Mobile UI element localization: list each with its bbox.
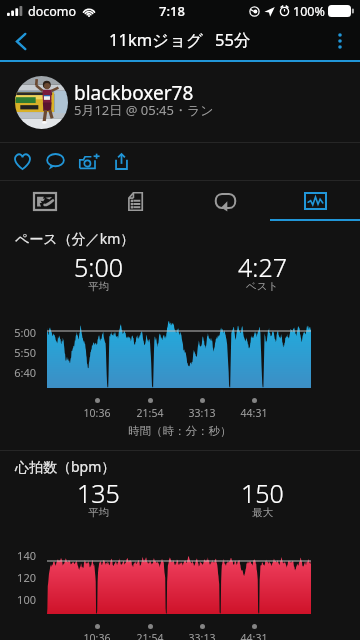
staticText: 10:36	[79, 631, 115, 640]
staticText: 10:36	[79, 406, 115, 420]
staticText: 心拍数（bpm）	[15, 457, 116, 476]
staticText: 5月12日 @ 05:45・ラン	[74, 101, 214, 119]
button[interactable]: Map	[0, 181, 90, 221]
staticText: 5:00	[0, 325, 36, 340]
staticText: 55分	[215, 28, 251, 51]
staticText: 21:54	[132, 631, 168, 640]
staticText: 33:13	[184, 631, 220, 640]
button[interactable]: blackboxer78	[0, 62, 360, 142]
staticText: 6:40	[0, 365, 36, 380]
staticText: 150	[241, 476, 284, 510]
staticText: 最大	[252, 506, 273, 519]
staticText: 7:18	[159, 2, 185, 20]
staticText: 33:13	[184, 406, 220, 420]
button[interactable]: Add photo	[72, 143, 105, 180]
staticText: 時間（時：分：秒）	[128, 424, 232, 438]
staticText: 120	[0, 570, 36, 585]
staticText: 5:00	[74, 250, 123, 284]
staticText: 44:31	[236, 631, 272, 640]
button[interactable]: Like	[6, 143, 39, 180]
staticText: 4:27	[238, 250, 287, 284]
button[interactable]: Splits	[90, 181, 180, 221]
staticText: ペース（分／km）	[15, 229, 135, 248]
staticText: 平均	[88, 506, 109, 519]
staticText: 21:54	[132, 406, 168, 420]
staticText: docomo	[28, 3, 77, 20]
staticText: 100%	[293, 3, 325, 20]
button[interactable]: Laps	[180, 181, 270, 221]
button[interactable]: Share	[105, 143, 138, 180]
button[interactable]: Back	[0, 22, 42, 60]
button[interactable]: Comment	[39, 143, 72, 180]
staticText: 140	[0, 548, 36, 563]
staticText: blackboxer78	[74, 80, 194, 106]
button[interactable]: Graphs	[270, 181, 360, 221]
staticText: 11kmジョグ	[109, 28, 203, 51]
button[interactable]: More options	[320, 22, 360, 60]
staticText: 135	[77, 476, 120, 510]
staticText: 100	[0, 592, 36, 607]
staticText: 44:31	[236, 406, 272, 420]
staticText: ベスト	[246, 280, 279, 293]
staticText: 5:50	[0, 345, 36, 360]
staticText: 平均	[88, 280, 109, 293]
